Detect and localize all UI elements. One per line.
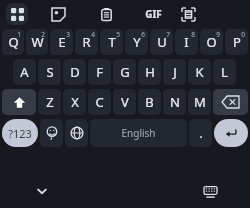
staticText: S bbox=[46, 63, 54, 81]
button[interactable]: Backspace bbox=[213, 89, 248, 115]
staticText: ?123 bbox=[8, 126, 32, 141]
button[interactable]: B bbox=[138, 89, 161, 115]
button[interactable]: I bbox=[175, 29, 198, 55]
button[interactable]: Q bbox=[2, 29, 24, 55]
button[interactable]: R bbox=[75, 29, 98, 55]
button[interactable]: Back bbox=[30, 179, 54, 203]
button[interactable]: GIF bbox=[140, 4, 166, 24]
button[interactable]: F bbox=[88, 59, 111, 85]
button[interactable]: English bbox=[90, 119, 187, 147]
button[interactable]: J bbox=[163, 59, 186, 85]
button[interactable]: Text scan bbox=[178, 4, 198, 24]
staticText: 4 bbox=[91, 30, 95, 39]
staticText: B bbox=[145, 93, 154, 111]
staticText: 5 bbox=[116, 30, 120, 39]
staticText: 9 bbox=[216, 30, 220, 39]
staticText: GIF bbox=[145, 7, 162, 21]
button[interactable]: D bbox=[63, 59, 86, 85]
staticText: U bbox=[157, 33, 167, 51]
button[interactable]: W bbox=[26, 29, 48, 55]
button[interactable]: T bbox=[100, 29, 123, 55]
staticText: R bbox=[82, 33, 91, 51]
button[interactable]: ?123 bbox=[2, 119, 38, 147]
staticText: English bbox=[121, 126, 156, 140]
button[interactable]: P bbox=[225, 29, 248, 55]
button[interactable]: K bbox=[188, 59, 211, 85]
button[interactable]: M bbox=[188, 89, 211, 115]
button[interactable]: Y bbox=[125, 29, 148, 55]
staticText: C bbox=[95, 93, 104, 111]
button[interactable]: Change language bbox=[65, 119, 88, 147]
staticText: N bbox=[170, 93, 180, 111]
staticText: F bbox=[96, 63, 103, 81]
button[interactable]: Z bbox=[38, 89, 61, 115]
staticText: T bbox=[108, 33, 116, 51]
staticText: M bbox=[194, 93, 206, 111]
button[interactable]: O bbox=[200, 29, 223, 55]
button[interactable]: S bbox=[38, 59, 61, 85]
staticText: A bbox=[20, 63, 29, 81]
button[interactable]: Stickers bbox=[48, 4, 68, 24]
staticText: W bbox=[31, 33, 44, 51]
staticText: . bbox=[199, 124, 203, 142]
staticText: 7 bbox=[166, 30, 170, 39]
button[interactable]: Emoji bbox=[40, 119, 63, 147]
button[interactable]: L bbox=[213, 59, 236, 85]
staticText: 2 bbox=[41, 30, 45, 39]
staticText: P bbox=[233, 33, 241, 51]
staticText: D bbox=[70, 63, 80, 81]
staticText: X bbox=[71, 93, 79, 111]
staticText: 0 bbox=[241, 30, 245, 39]
button[interactable]: A bbox=[13, 59, 36, 85]
button[interactable]: C bbox=[88, 89, 111, 115]
staticText: J bbox=[173, 63, 177, 81]
staticText: E bbox=[58, 33, 66, 51]
staticText: Y bbox=[133, 33, 141, 51]
button[interactable]: Enter bbox=[214, 119, 248, 147]
button[interactable]: E bbox=[50, 29, 73, 55]
button[interactable]: G bbox=[113, 59, 136, 85]
staticText: V bbox=[121, 93, 129, 111]
staticText: G bbox=[120, 63, 130, 81]
button[interactable]: U bbox=[150, 29, 173, 55]
staticText: 6 bbox=[141, 30, 145, 39]
button[interactable]: N bbox=[163, 89, 186, 115]
button[interactable]: Apps bbox=[6, 3, 28, 25]
staticText: 8 bbox=[191, 30, 195, 39]
button[interactable]: Shift bbox=[2, 89, 36, 115]
button[interactable]: . bbox=[189, 119, 212, 147]
staticText: 3 bbox=[66, 30, 70, 39]
button[interactable]: Hide keyboard bbox=[198, 179, 222, 203]
button[interactable]: H bbox=[138, 59, 161, 85]
staticText: L bbox=[221, 63, 228, 81]
staticText: Z bbox=[46, 93, 54, 111]
staticText: O bbox=[206, 33, 217, 51]
button[interactable]: X bbox=[63, 89, 86, 115]
staticText: I bbox=[184, 33, 189, 51]
button[interactable]: Clipboard bbox=[96, 4, 116, 24]
button[interactable]: V bbox=[113, 89, 136, 115]
staticText: K bbox=[195, 63, 204, 81]
staticText: 1 bbox=[17, 30, 21, 39]
staticText: H bbox=[145, 63, 155, 81]
staticText: Q bbox=[8, 33, 19, 51]
